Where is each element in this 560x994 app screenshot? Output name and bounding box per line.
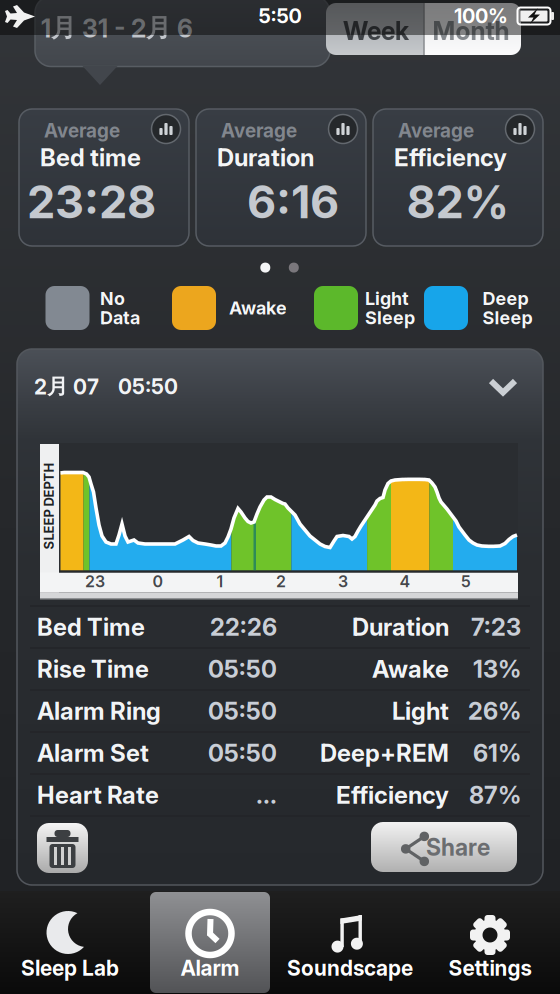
staticText: Alarm Set [37,739,149,767]
staticText: 05:50 [208,655,277,683]
staticText: 7:23 [471,613,521,641]
staticText: 13% [473,655,521,683]
button[interactable]: Statistics [505,114,534,143]
staticText: 26% [468,697,521,725]
staticText: Duration [217,143,314,172]
staticText: 2月 07 [34,374,99,399]
button[interactable]: 1月 31 - 2月 6 [35,0,330,86]
button[interactable]: Week [326,3,424,55]
staticText: 22:26 [210,613,277,641]
staticText: ... [256,781,277,809]
staticText: Deep+REM [320,739,449,767]
staticText: 1 [216,572,223,591]
staticText: 2 [276,572,286,591]
staticText: Share [426,834,490,861]
staticText: Efficiency [336,781,449,809]
staticText: Soundscape [287,956,413,980]
staticText: Sleep [482,307,532,328]
staticText: Average [221,119,297,142]
staticText: Bed time [40,143,141,172]
staticText: 3 [338,572,348,591]
button[interactable]: Delete [37,823,88,873]
staticText: Rise Time [37,655,149,683]
staticText: Alarm Ring [37,697,161,725]
staticText: 0 [152,572,163,591]
button[interactable]: Share [371,822,517,872]
staticText: Settings [448,956,531,980]
staticText: 100% [454,4,508,28]
staticText: 1月 31 - 2月 6 [41,13,193,43]
staticText: 61% [473,739,521,767]
staticText: Week [343,16,409,46]
staticText: Month [432,16,509,46]
staticText: No [100,288,125,309]
staticText: Heart Rate [37,781,159,809]
staticText: Light [392,697,449,725]
button[interactable]: Sleep Lab [0,891,140,994]
staticText: 23:28 [27,175,156,229]
staticText: Deep [482,288,528,309]
staticText: Efficiency [394,143,507,172]
staticText: 5:50 [258,4,301,28]
staticText: 4 [399,572,410,591]
button[interactable]: Soundscape [280,891,420,994]
button[interactable]: Statistics [328,114,357,143]
staticText: SLEEP DEPTH [5,498,92,514]
staticText: 6:16 [247,175,339,229]
staticText: Light [365,288,409,309]
staticText: Sleep [365,307,415,328]
staticText: 82% [406,175,509,229]
staticText: Sleep Lab [21,956,119,980]
staticText: Data [100,307,140,328]
staticText: Average [44,119,120,142]
staticText: Awake [229,297,287,319]
button[interactable]: Month [424,3,521,55]
button[interactable]: Settings [420,891,560,994]
staticText: Bed Time [37,613,145,641]
staticText: Duration [352,613,449,641]
staticText: Awake [372,655,449,683]
staticText: 05:50 [208,739,277,767]
staticText: 5 [461,572,471,591]
button[interactable]: Alarm [140,891,280,994]
staticText: Alarm [180,956,239,980]
staticText: 05:50 [208,697,277,725]
staticText: Average [398,119,474,142]
staticText: 05:50 [118,374,178,399]
staticText: 87% [469,781,521,809]
button[interactable]: Statistics [151,114,180,143]
staticText: 23 [85,572,105,591]
button[interactable]: Collapse [489,379,517,395]
